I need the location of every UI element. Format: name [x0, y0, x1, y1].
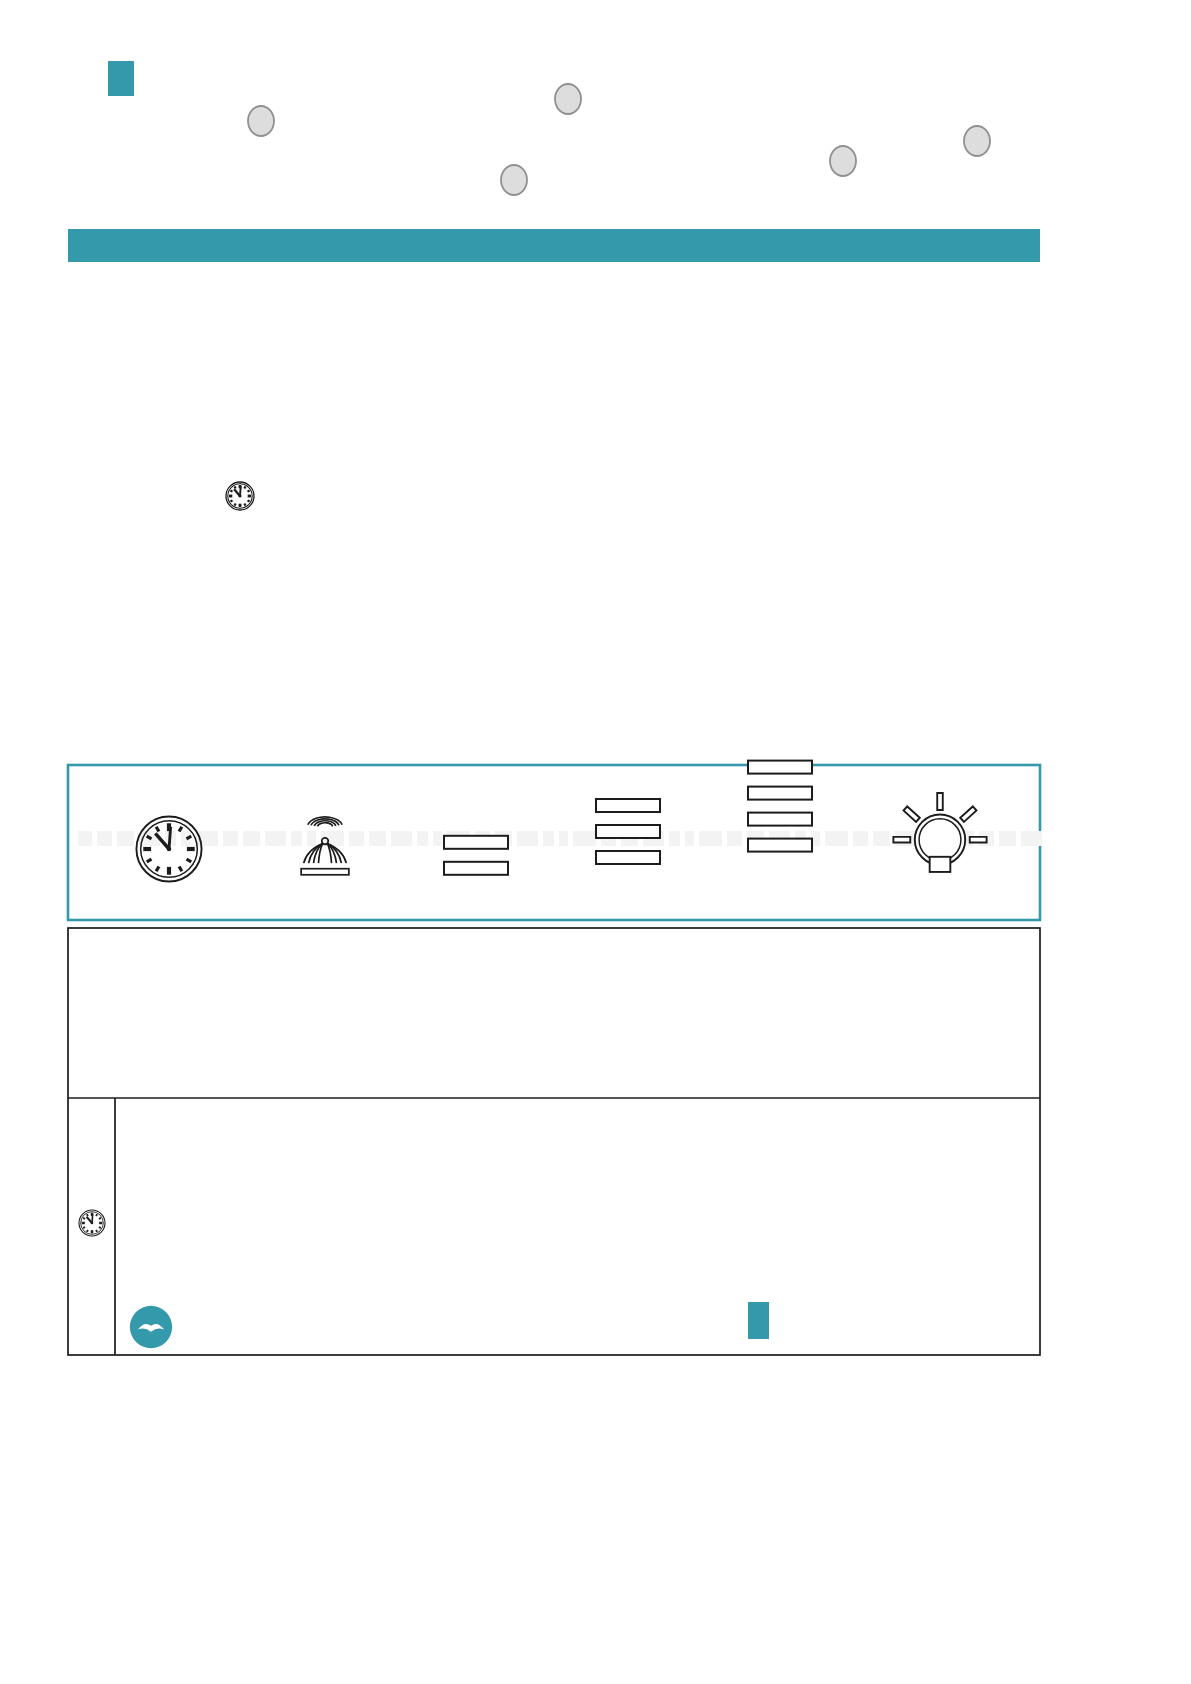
button[interactable]: Two bars: [436, 806, 516, 886]
button[interactable]: Light bulb: [898, 796, 982, 880]
button[interactable]: Broadcast signal: [286, 806, 364, 884]
button[interactable]: Clock: [132, 812, 206, 886]
button[interactable]: Three bars: [588, 792, 668, 872]
button[interactable]: Four bars: [740, 778, 820, 858]
button[interactable]: Reading resource: [128, 1304, 174, 1350]
